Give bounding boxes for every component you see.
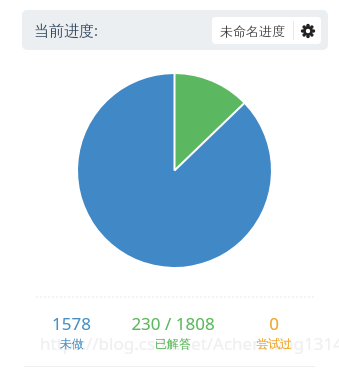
button[interactable]: 0 bbox=[227, 312, 321, 351]
staticText: 当前进度: bbox=[34, 20, 99, 40]
staticText: 1578 bbox=[52, 312, 91, 335]
staticText: https://blog.csdn.net/Achenming1314 bbox=[40, 332, 339, 355]
button[interactable]: 未命名进度 bbox=[212, 17, 321, 44]
staticText: 尝试过 bbox=[256, 336, 292, 351]
staticText: 230 / 1808 bbox=[131, 312, 215, 335]
button[interactable]: 1578 bbox=[24, 312, 119, 351]
button[interactable]: Settings bbox=[294, 17, 321, 44]
button[interactable]: 230 / 1808 bbox=[119, 312, 227, 351]
staticText: 未做 bbox=[60, 336, 84, 351]
staticText: 未命名进度 bbox=[220, 23, 285, 39]
staticText: 0 bbox=[269, 312, 279, 335]
staticText: 已解答 bbox=[155, 336, 191, 351]
